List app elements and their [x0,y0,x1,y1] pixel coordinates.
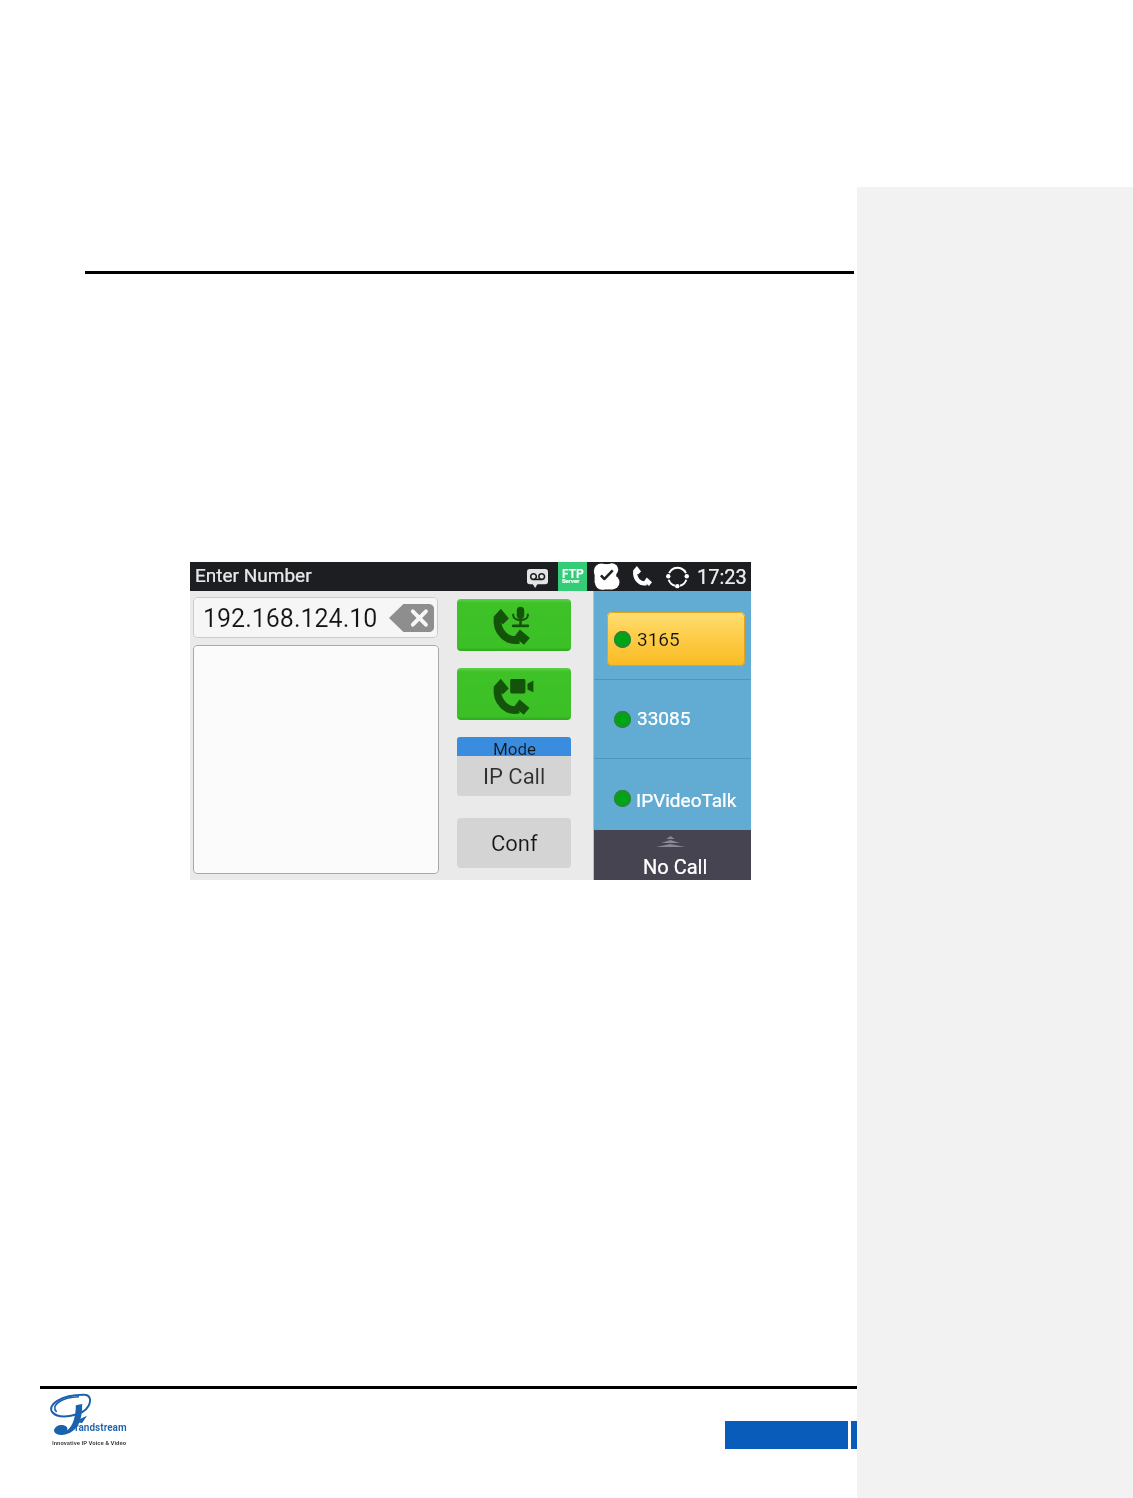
staticText: Enter Number [195,564,312,586]
button[interactable]: 33085 [594,680,751,759]
staticText: Conf [491,831,538,857]
staticText: 33085 [637,707,691,729]
staticText: 17:23 [697,565,747,588]
button[interactable]: Audio call [457,599,571,651]
button[interactable]: Mode [457,737,571,796]
button[interactable]: IPVideoTalk [594,759,751,830]
staticText: IPVideoTalk [636,789,737,811]
staticText: No Call [643,855,708,878]
button[interactable]: Conf [457,818,571,868]
staticText: 192.168.124.10 [203,604,378,633]
staticText: FTP [562,567,584,581]
staticText: Server [562,577,580,584]
button[interactable]: 192.168.124.10 [193,597,438,638]
staticText: IP Call [483,764,546,790]
button[interactable]: Backspace [389,604,434,632]
button[interactable]: No Call [594,830,751,880]
button[interactable]: 3165 [607,612,745,666]
staticText: 3165 [637,628,680,650]
staticText: randstream [75,1422,127,1434]
staticText: Innovative IP Voice & Video [52,1439,127,1446]
button[interactable]: Video call [457,668,571,720]
staticText: Mode [493,739,537,758]
